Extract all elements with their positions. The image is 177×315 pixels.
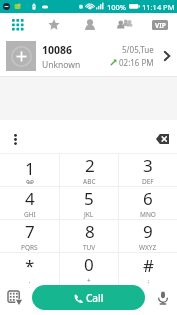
staticText: 6 (143, 187, 153, 210)
button[interactable]: 3 (119, 154, 177, 186)
staticText: PQRS (21, 243, 38, 252)
button[interactable]: 10086 (0, 36, 177, 76)
staticText: # (143, 254, 154, 277)
staticText: 10086 (42, 43, 73, 57)
staticText: 9 (143, 220, 153, 243)
staticText: + (87, 276, 91, 285)
staticText: 02:16 PM (119, 57, 154, 68)
staticText: Unknown (42, 59, 81, 71)
button[interactable]: 0 (60, 253, 118, 285)
staticText: JKL (84, 210, 94, 219)
button[interactable]: 9 (119, 220, 177, 252)
button[interactable]: * (0, 253, 59, 285)
staticText: 11:14 PM (142, 2, 175, 12)
button[interactable]: VIP (142, 13, 177, 36)
button[interactable]: # (119, 253, 177, 285)
staticText: ABC (83, 177, 96, 186)
button[interactable]: 6 (119, 187, 177, 219)
button[interactable]: Hide dialpad (6, 289, 23, 306)
button[interactable]: 7 (0, 220, 59, 252)
staticText: ; (148, 277, 150, 285)
staticText: 5 (84, 187, 94, 210)
button[interactable]: 1 (0, 154, 59, 186)
staticText: Call (86, 291, 104, 305)
staticText: 2 (85, 154, 95, 177)
staticText: DEF (142, 177, 154, 186)
staticText: 5/05,Tue (122, 44, 154, 55)
staticText: 4 (25, 187, 35, 210)
staticText: 8 (85, 220, 95, 243)
button[interactable]: Call (32, 285, 145, 310)
staticText: 0 (84, 253, 94, 276)
staticText: 1 (25, 157, 35, 180)
staticText: , (29, 277, 31, 285)
button[interactable]: 8 (60, 220, 118, 252)
staticText: MNO (140, 210, 156, 219)
staticText: 7 (25, 220, 35, 243)
button[interactable]: Contacts (72, 13, 107, 36)
button[interactable]: Voice dial (154, 289, 171, 306)
button[interactable]: 5 (60, 187, 118, 219)
staticText: TUV (83, 243, 96, 252)
staticText: VIP (155, 21, 166, 30)
button[interactable]: Favorites (36, 13, 72, 36)
staticText: WXYZ (139, 243, 157, 252)
button[interactable]: Dialpad (0, 13, 36, 36)
button[interactable]: 2 (60, 154, 118, 186)
staticText: * (25, 254, 35, 277)
staticText: 3 (143, 154, 153, 177)
button[interactable]: Groups (107, 13, 142, 36)
button[interactable]: More options (7, 131, 23, 147)
button[interactable]: Backspace (151, 131, 173, 147)
staticText: GHI (24, 210, 36, 219)
button[interactable]: 4 (0, 187, 59, 219)
staticText: 100% (107, 2, 127, 12)
